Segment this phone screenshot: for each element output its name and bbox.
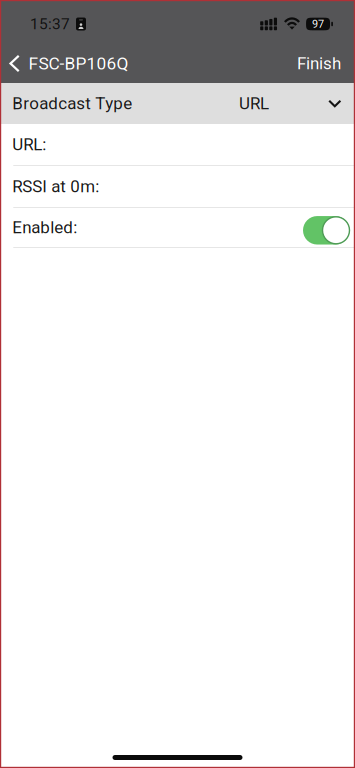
- button[interactable]: FSC-BP106Q: [0, 44, 138, 83]
- button[interactable]: Enabled:: [0, 208, 355, 247]
- staticText: 97: [312, 18, 324, 30]
- staticText: FSC-BP106Q: [28, 53, 128, 74]
- staticText: RSSI at 0m:: [12, 177, 99, 196]
- button[interactable]: Broadcast Type: [0, 83, 355, 124]
- staticText: URL: [239, 94, 269, 113]
- staticText: URL:: [12, 135, 46, 154]
- staticText: 15:37: [30, 15, 70, 33]
- staticText: Broadcast Type: [12, 94, 132, 113]
- staticText: Enabled:: [12, 218, 77, 237]
- button[interactable]: Finish: [283, 44, 355, 83]
- staticText: Finish: [297, 54, 341, 73]
